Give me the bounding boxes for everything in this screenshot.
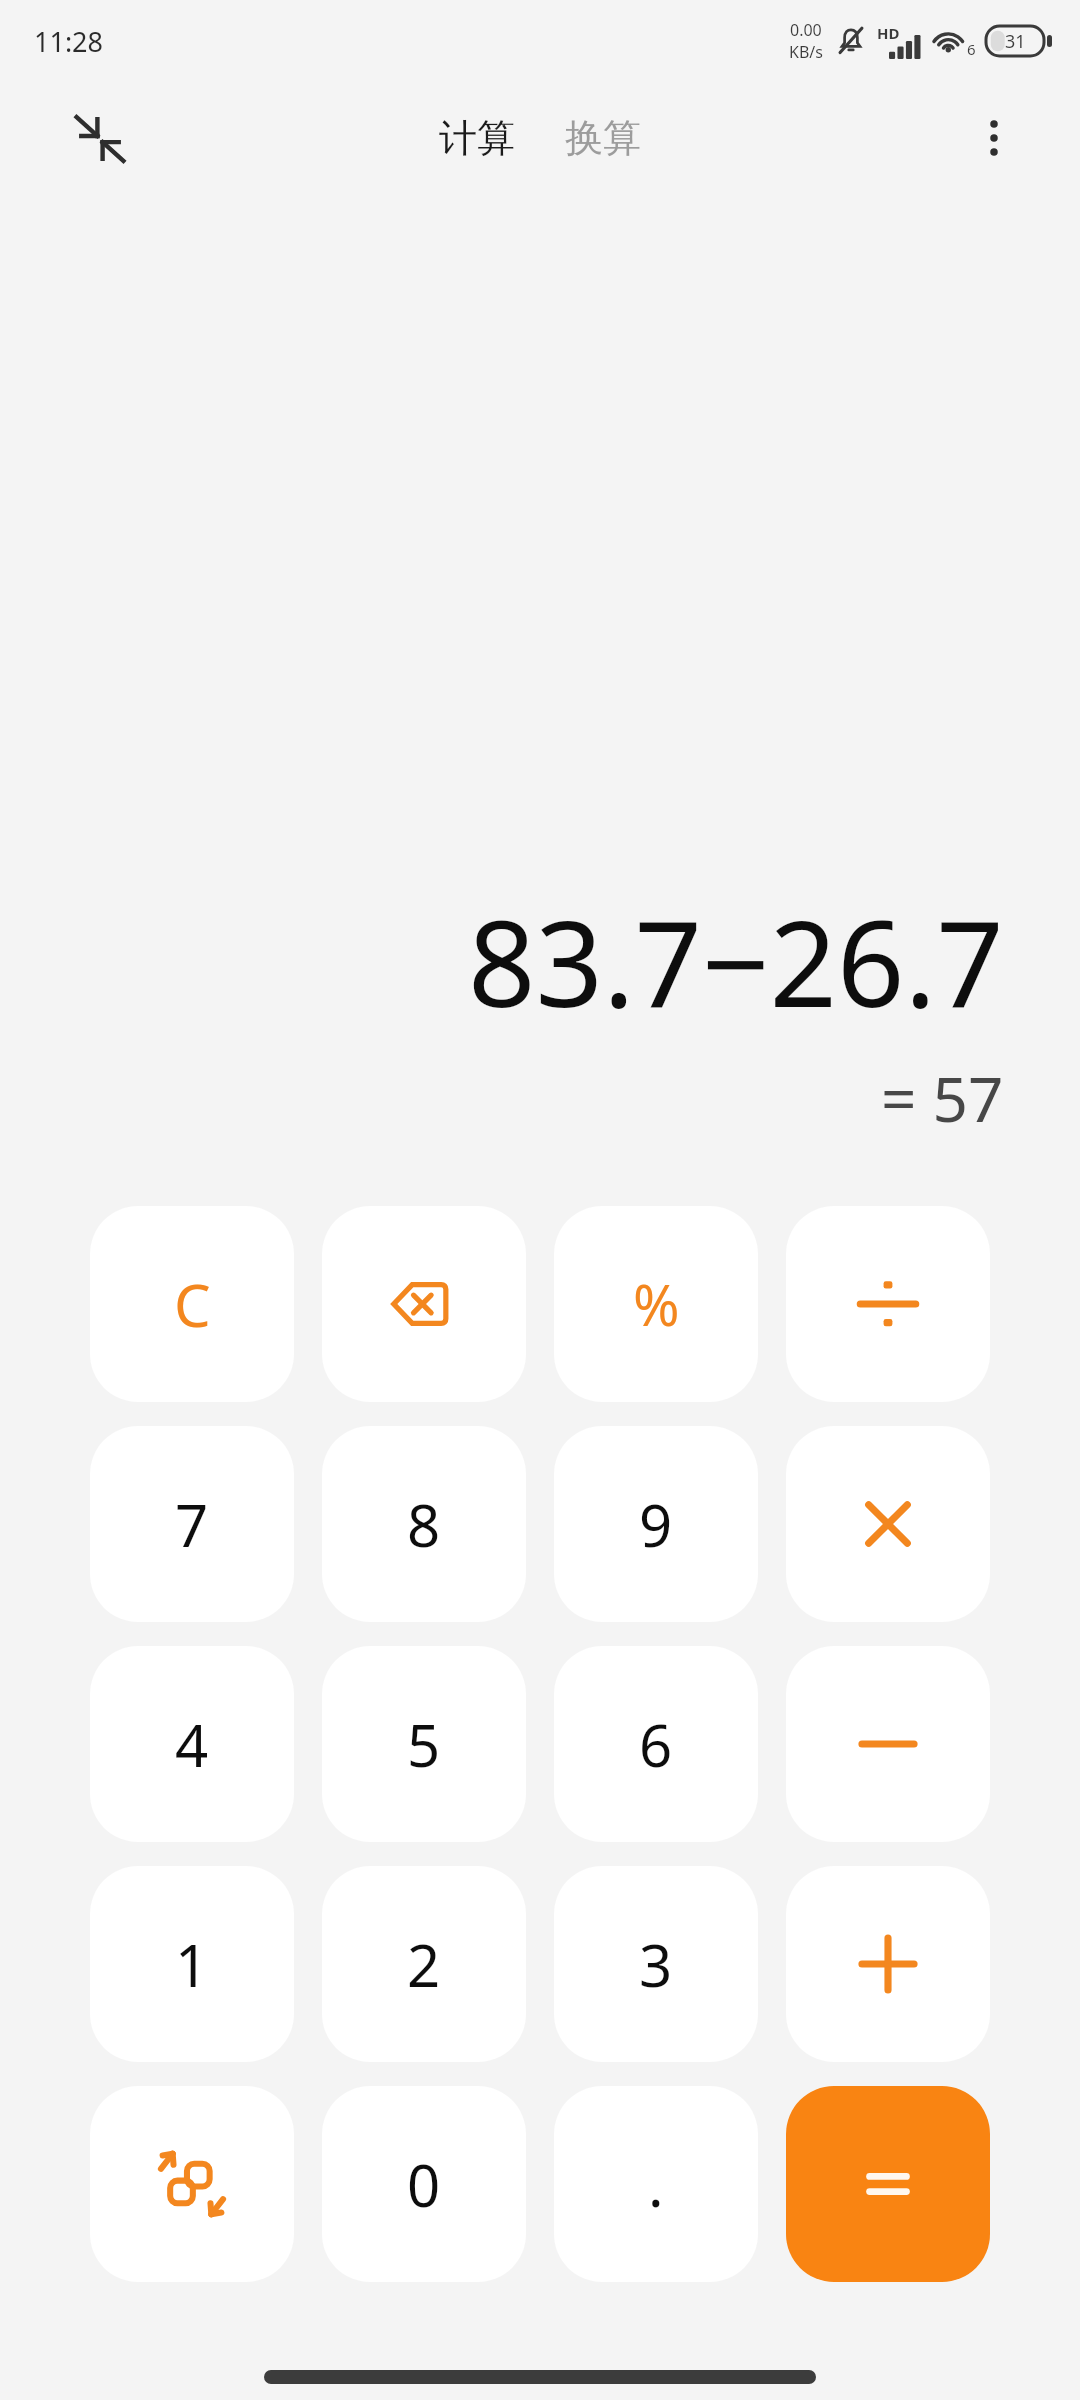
button[interactable]: 4	[90, 1646, 294, 1842]
staticText: 9	[639, 1485, 673, 1564]
staticText: 4	[175, 1705, 209, 1784]
staticText: 0	[407, 2145, 441, 2224]
button[interactable]: C	[90, 1206, 294, 1402]
staticText: KB/s	[789, 41, 823, 63]
button[interactable]: Equals	[786, 2086, 990, 2282]
staticText: .	[648, 2145, 664, 2224]
button[interactable]: %	[554, 1206, 758, 1402]
staticText: 换算	[565, 114, 641, 162]
button[interactable]: 0	[322, 2086, 526, 2282]
button[interactable]: Convert	[90, 2086, 294, 2282]
staticText: 8	[407, 1485, 441, 1564]
button[interactable]: 8	[322, 1426, 526, 1622]
staticText: 2	[407, 1925, 441, 2004]
staticText: HD	[877, 23, 900, 43]
staticText: 计算	[439, 114, 515, 162]
staticText: 11:28	[34, 23, 104, 60]
button[interactable]: Multiply	[786, 1426, 990, 1622]
button[interactable]: Plus	[786, 1866, 990, 2062]
staticText: 83.7−26.7	[468, 881, 1004, 1042]
staticText: 6	[967, 39, 976, 59]
button[interactable]: 3	[554, 1866, 758, 2062]
staticText: %	[633, 1266, 680, 1342]
button[interactable]: 1	[90, 1866, 294, 2062]
button[interactable]: 6	[554, 1646, 758, 1842]
staticText: 7	[175, 1485, 209, 1564]
button[interactable]: More options	[952, 96, 1036, 180]
button[interactable]: Minus	[786, 1646, 990, 1842]
button[interactable]: .	[554, 2086, 758, 2282]
button[interactable]: 2	[322, 1866, 526, 2062]
button[interactable]: 计算	[429, 106, 525, 170]
staticText: = 57	[881, 1056, 1004, 1140]
button[interactable]: 9	[554, 1426, 758, 1622]
staticText: 1	[175, 1925, 209, 2004]
button[interactable]: 换算	[555, 106, 651, 170]
button[interactable]: Backspace	[322, 1206, 526, 1402]
staticText: 31	[1005, 29, 1026, 54]
staticText: 3	[639, 1925, 673, 2004]
button[interactable]: Collapse	[58, 96, 142, 180]
staticText: 0.00	[790, 19, 822, 41]
button[interactable]: 5	[322, 1646, 526, 1842]
button[interactable]: Divide	[786, 1206, 990, 1402]
staticText: C	[174, 1265, 211, 1344]
staticText: 6	[639, 1705, 673, 1784]
button[interactable]: 7	[90, 1426, 294, 1622]
staticText: 5	[407, 1705, 441, 1784]
